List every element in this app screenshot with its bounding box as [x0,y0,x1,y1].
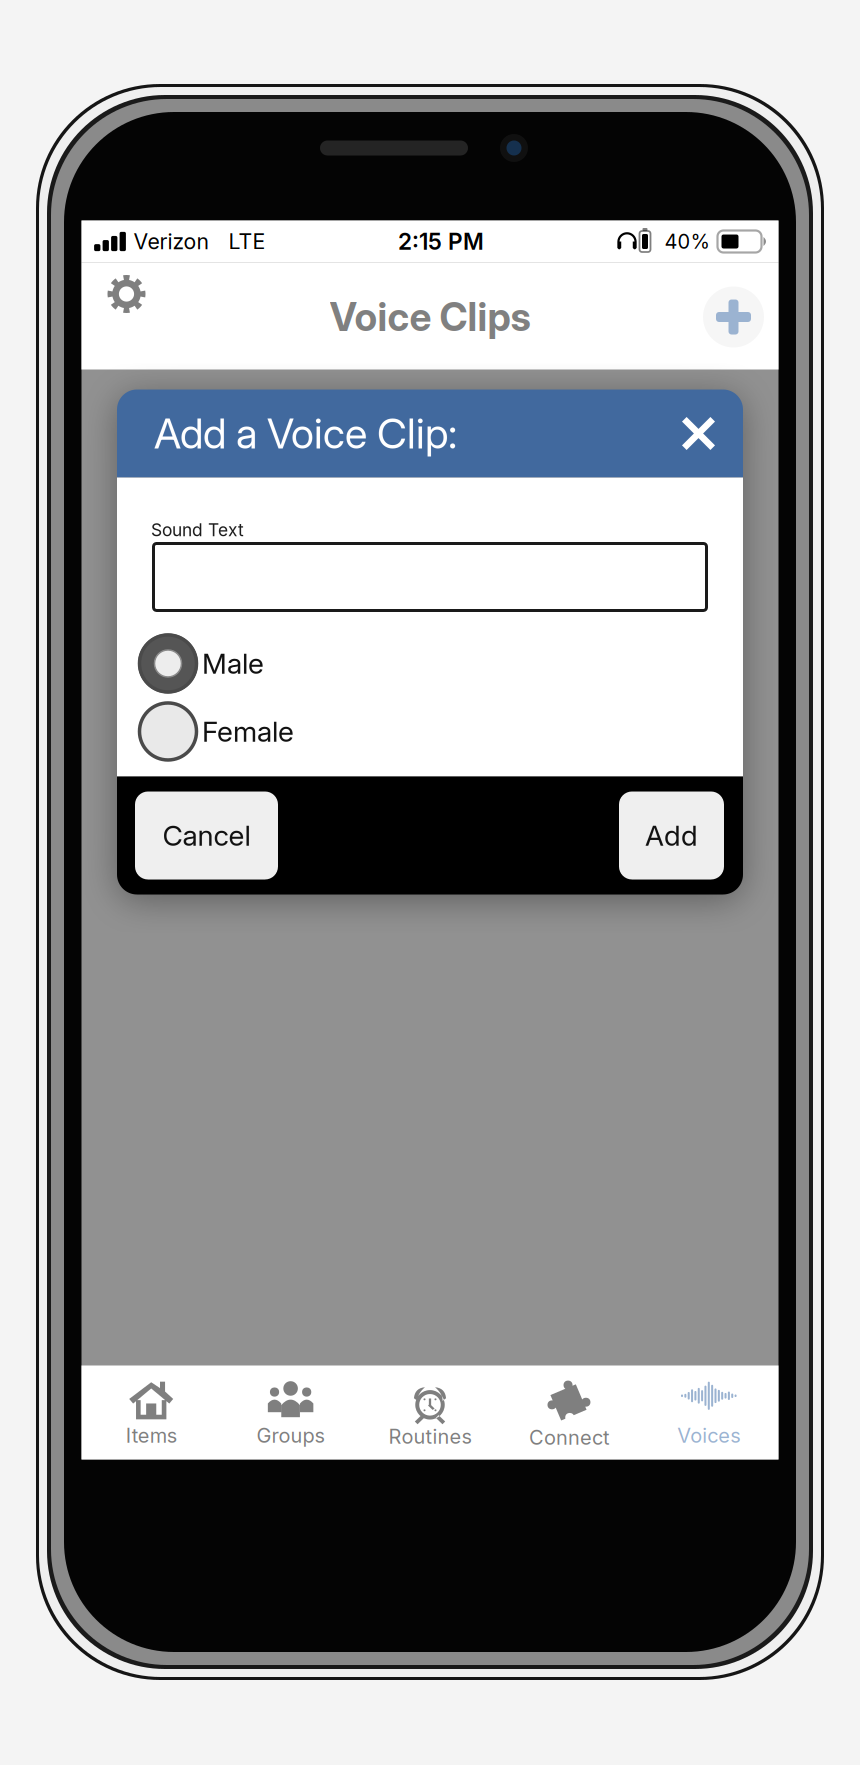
staticText: Cancel [162,819,250,852]
button[interactable]: Add [700,283,766,349]
staticText: Routines [388,1424,471,1449]
staticText: Verizon [133,229,209,254]
staticText: Connect [529,1425,610,1450]
staticText: Items [126,1423,177,1447]
staticText: LTE [228,229,265,254]
button[interactable]: Voices [639,1365,778,1459]
button[interactable]: Routines [360,1365,500,1459]
staticText: Voice Clips [329,294,530,340]
button[interactable]: Items [81,1365,221,1459]
button[interactable]: Male [117,631,743,695]
button[interactable]: Connect [500,1365,639,1459]
staticText: 2:15 PM [398,228,484,255]
staticText: Sound Text [151,519,244,540]
staticText: Add a Voice Clip: [154,408,457,458]
staticText: Voices [677,1423,740,1447]
staticText: Add [645,819,698,852]
staticText: Groups [257,1423,325,1447]
staticText: Female [202,714,294,748]
staticText: Male [202,646,264,680]
button[interactable]: Cancel [135,791,278,879]
button[interactable]: Groups [221,1365,360,1459]
staticText: 40% [664,229,709,254]
button[interactable]: Female [117,699,743,763]
button[interactable]: Add [619,791,724,879]
button[interactable]: Close [668,403,729,464]
button[interactable]: Settings [94,284,158,348]
